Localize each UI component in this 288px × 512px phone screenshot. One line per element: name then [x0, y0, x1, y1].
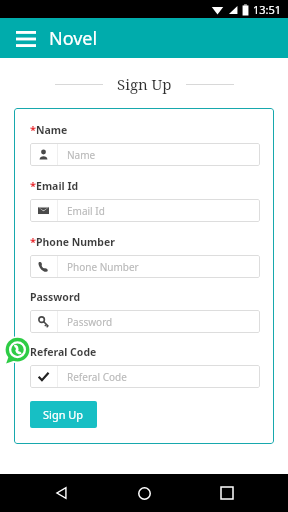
staticText: Referal Code [30, 345, 97, 359]
button[interactable]: Name [30, 143, 260, 166]
staticText: Phone Number [67, 260, 139, 274]
button[interactable]: Chat on WhatsApp [4, 337, 31, 364]
button[interactable]: Home [123, 474, 165, 512]
button[interactable]: Open navigation menu [13, 27, 39, 51]
button[interactable]: Sign Up [30, 401, 97, 428]
button[interactable]: Password [30, 310, 260, 333]
staticText: Referal Code [67, 370, 127, 384]
staticText: * [30, 234, 36, 249]
button[interactable]: Recent apps [206, 474, 248, 512]
staticText: * [30, 122, 36, 137]
staticText: Email Id [36, 179, 79, 193]
staticText: Name [67, 148, 96, 162]
staticText: Sign Up [117, 74, 172, 94]
button[interactable]: Phone Number [30, 255, 260, 278]
staticText: Email Id [67, 204, 105, 218]
staticText: * [30, 178, 36, 193]
staticText: Novel [49, 26, 98, 51]
button[interactable]: Back [41, 474, 83, 512]
staticText: 13:51 [253, 2, 282, 17]
staticText: Phone Number [36, 235, 115, 249]
staticText: Password [67, 315, 113, 329]
staticText: Name [36, 123, 68, 137]
button[interactable]: Email Id [30, 199, 260, 222]
staticText: Password [30, 290, 81, 304]
button[interactable]: Referal Code [30, 365, 260, 388]
staticText: Sign Up [43, 407, 84, 422]
